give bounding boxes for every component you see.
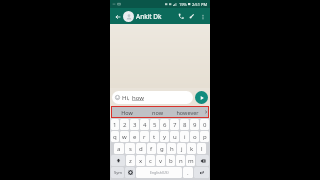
button[interactable]: More suggestions (202, 106, 209, 118)
button[interactable]: Send (195, 91, 208, 104)
staticText: d (139, 145, 143, 153)
staticText: 4 (143, 121, 147, 129)
staticText: a (117, 145, 121, 153)
staticText: r (143, 133, 146, 141)
staticText: z (129, 157, 132, 165)
staticText: 19% (179, 2, 187, 7)
button[interactable]: r (140, 131, 149, 142)
button[interactable]: k (187, 143, 196, 154)
button[interactable]: How (111, 106, 142, 118)
button[interactable]: 6 (160, 119, 169, 130)
staticText: y (163, 133, 167, 141)
staticText: x (139, 157, 143, 165)
button[interactable]: now (142, 106, 172, 118)
button[interactable]: . (183, 167, 193, 178)
staticText: 6 (163, 121, 167, 129)
button[interactable]: c (146, 155, 155, 166)
button[interactable]: English(US) (136, 167, 182, 178)
button[interactable]: x (136, 155, 145, 166)
staticText: o (193, 133, 197, 141)
button[interactable]: 9 (190, 119, 199, 130)
staticText: Hi, (122, 94, 132, 102)
staticText: m (188, 157, 194, 165)
staticText: g (160, 145, 164, 153)
staticText: 3 (133, 121, 137, 129)
button[interactable]: Ankit Dk (136, 12, 176, 21)
button[interactable]: Hi, (112, 91, 193, 104)
staticText: b (169, 157, 173, 165)
button[interactable]: d (136, 143, 146, 154)
staticText: 5 (153, 121, 157, 129)
staticText: q (113, 133, 117, 141)
staticText: h (170, 145, 174, 153)
button[interactable]: a (114, 143, 124, 154)
button[interactable]: 8 (180, 119, 189, 130)
staticText: w (122, 133, 127, 141)
staticText: f (150, 145, 153, 153)
button[interactable]: s (125, 143, 135, 154)
staticText: c (149, 157, 152, 165)
button[interactable]: 3 (130, 119, 139, 130)
button[interactable]: Sym (111, 167, 124, 178)
staticText: how (132, 94, 144, 102)
staticText: j (181, 145, 183, 153)
button[interactable]: l (197, 143, 206, 154)
staticText: 8 (183, 121, 187, 129)
button[interactable]: 1 (111, 119, 119, 130)
button[interactable]: Shift (111, 155, 125, 166)
staticText: u (173, 133, 177, 141)
button[interactable]: y (160, 131, 169, 142)
staticText: s (129, 145, 132, 153)
staticText: 9 (193, 121, 197, 129)
button[interactable]: b (166, 155, 175, 166)
staticText: now (152, 109, 163, 116)
staticText: 2:51 PM (192, 2, 208, 7)
staticText: n (179, 157, 183, 165)
button[interactable]: z (126, 155, 135, 166)
staticText: English(US) (150, 170, 169, 175)
button[interactable]: e (130, 131, 139, 142)
button[interactable]: Contact photo (123, 11, 134, 22)
staticText: l (201, 145, 203, 153)
button[interactable]: t (150, 131, 159, 142)
button[interactable]: u (170, 131, 179, 142)
button[interactable]: however (172, 106, 202, 118)
button[interactable]: i (180, 131, 189, 142)
button[interactable]: Backspace (196, 155, 209, 166)
staticText: k (190, 145, 194, 153)
button[interactable]: q (111, 131, 119, 142)
staticText: p (203, 133, 207, 141)
staticText: Sym (114, 170, 122, 175)
button[interactable]: Back (113, 12, 122, 21)
staticText: e (133, 133, 137, 141)
button[interactable]: p (200, 131, 209, 142)
button[interactable]: g (157, 143, 166, 154)
button[interactable]: n (176, 155, 185, 166)
button[interactable]: f (147, 143, 156, 154)
button[interactable]: m (186, 155, 195, 166)
button[interactable]: Attach (187, 11, 197, 21)
staticText: 7 (173, 121, 177, 129)
button[interactable]: o (190, 131, 199, 142)
button[interactable]: 4 (140, 119, 149, 130)
button[interactable]: w (120, 131, 129, 142)
button[interactable]: More options (198, 12, 207, 21)
button[interactable]: v (156, 155, 165, 166)
button[interactable]: Keyboard settings (125, 167, 135, 178)
staticText: 1 (113, 121, 117, 129)
button[interactable]: 0 (200, 119, 209, 130)
staticText: however (176, 109, 199, 116)
staticText: v (159, 157, 163, 165)
button[interactable]: 5 (150, 119, 159, 130)
button[interactable]: 2 (120, 119, 129, 130)
button[interactable]: Call (176, 11, 186, 21)
staticText: 2 (123, 121, 127, 129)
staticText: i (184, 133, 186, 141)
button[interactable]: Enter (194, 167, 209, 178)
staticText: . (187, 169, 189, 177)
button[interactable]: h (167, 143, 176, 154)
staticText: 0 (203, 121, 207, 129)
button[interactable]: 7 (170, 119, 179, 130)
staticText: How (121, 109, 133, 116)
button[interactable]: j (177, 143, 186, 154)
